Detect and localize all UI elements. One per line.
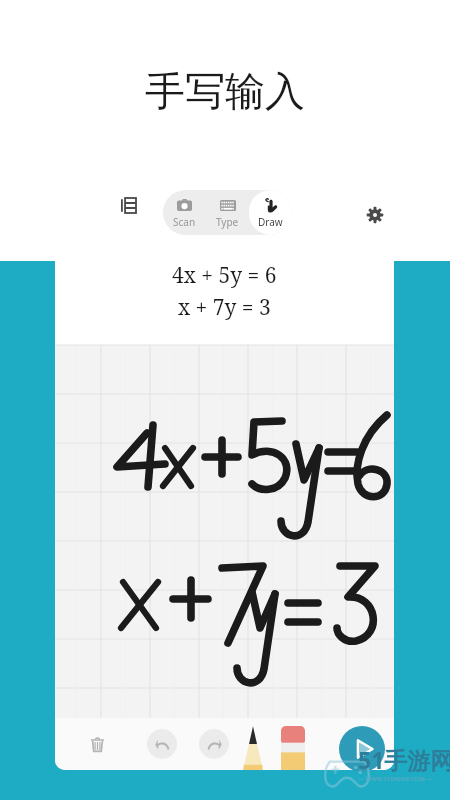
button[interactable]: Clear bbox=[84, 731, 110, 757]
button[interactable]: Settings bbox=[362, 202, 388, 228]
staticText: Draw bbox=[258, 215, 283, 229]
staticText: — WWW.51DANYE.COM — bbox=[358, 775, 433, 783]
staticText: Type bbox=[216, 215, 239, 229]
staticText: Scan bbox=[173, 215, 196, 229]
staticText: 手写输入 bbox=[145, 66, 305, 116]
staticText: 51手游网 bbox=[358, 744, 450, 775]
button[interactable]: Redo bbox=[199, 729, 229, 759]
button[interactable]: History bbox=[116, 193, 140, 217]
staticText: x + 7y = 3 bbox=[178, 293, 271, 322]
button[interactable]: Draw bbox=[249, 190, 292, 235]
button[interactable]: Undo bbox=[147, 729, 177, 759]
button[interactable]: Type bbox=[206, 190, 249, 235]
button[interactable]: Scan bbox=[163, 190, 206, 235]
button[interactable]: Pencil bbox=[235, 718, 271, 770]
button[interactable]: Eraser bbox=[281, 726, 305, 770]
staticText: 4x + 5y = 6 bbox=[172, 261, 277, 290]
